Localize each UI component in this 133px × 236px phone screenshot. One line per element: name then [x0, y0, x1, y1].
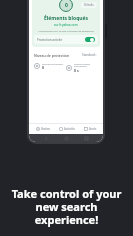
button[interactable]: Recent apps [83, 135, 89, 141]
staticText: Éléments bloqués [42, 62, 63, 65]
button[interactable]: Activités [57, 126, 77, 132]
button[interactable]: Protection activée [34, 35, 98, 44]
staticText: Détails [84, 3, 94, 7]
staticText: Accès [89, 127, 97, 131]
button[interactable]: Temps estimé économisé [66, 61, 98, 74]
staticText: Temps estimé économisé [74, 62, 98, 68]
staticText: Éléments bloqués [44, 15, 89, 22]
staticText: Niveau de protection [34, 53, 81, 58]
staticText: Protection activée [37, 38, 85, 42]
staticText: La protection sur ce site ? Essayez de d… [38, 29, 94, 32]
button[interactable]: Détails [81, 2, 97, 8]
staticText: 0 [42, 65, 45, 70]
staticText: Take control of your new search experien… [6, 186, 127, 227]
button[interactable]: Accès [82, 126, 99, 132]
button[interactable]: Standard › [81, 52, 98, 58]
button[interactable]: Back [43, 135, 49, 141]
staticText: sur fr.yahoo.com [54, 23, 78, 27]
button[interactable]: Éléments bloqués [34, 61, 66, 71]
staticText: 0 [65, 2, 68, 9]
staticText: Standard › [82, 53, 97, 57]
button[interactable]: Home [63, 135, 69, 141]
button[interactable]: Station [34, 126, 53, 132]
staticText: Station [41, 127, 51, 131]
staticText: 0 s [74, 68, 79, 73]
staticText: Activités [64, 127, 75, 131]
